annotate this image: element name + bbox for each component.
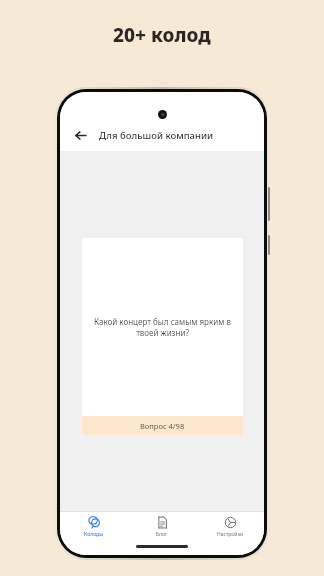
staticText: Вопрос 4/98: [140, 421, 185, 431]
staticText: Для большой компании: [99, 129, 214, 142]
staticText: Блог: [156, 531, 168, 538]
button[interactable]: Колоды: [60, 512, 128, 542]
staticText: Настройки: [217, 531, 244, 538]
button[interactable]: Блог: [128, 512, 196, 542]
staticText: Колоды: [84, 531, 104, 538]
button[interactable]: Настройки: [196, 512, 264, 542]
staticText: Какой концерт был самым ярким в твоей жи…: [91, 316, 234, 338]
button[interactable]: Back: [70, 125, 90, 145]
button[interactable]: Какой концерт был самым ярким в твоей жи…: [82, 238, 243, 435]
staticText: 20+ колод: [113, 22, 211, 48]
